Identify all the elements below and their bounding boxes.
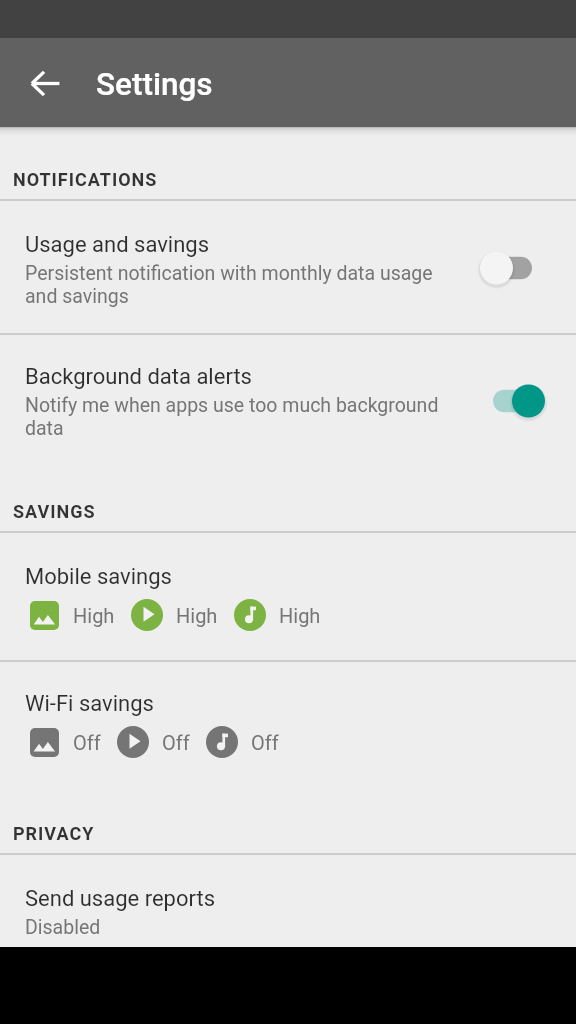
staticText: Off	[251, 731, 279, 754]
staticText: High	[73, 604, 115, 627]
button[interactable]: Background data alerts	[0, 335, 576, 465]
staticText: Persistent notification with monthly dat…	[25, 262, 455, 308]
button[interactable]: Mobile savings	[0, 533, 576, 660]
button[interactable]: Wi-Fi savings	[0, 662, 576, 787]
staticText: PRIVACY	[13, 823, 95, 844]
staticText: Disabled	[25, 916, 101, 939]
staticText: Mobile savings	[25, 564, 172, 590]
staticText: SAVINGS	[13, 501, 96, 522]
button[interactable]: Send usage reports	[0, 855, 576, 939]
staticText: Wi-Fi savings	[25, 691, 154, 717]
staticText: Settings	[96, 66, 213, 103]
button[interactable]: On	[470, 377, 546, 425]
staticText: Send usage reports	[25, 886, 216, 912]
button[interactable]: Off	[470, 244, 546, 292]
staticText: High	[279, 604, 321, 627]
button[interactable]: Usage and savings	[0, 201, 576, 333]
button[interactable]: Navigate up	[18, 56, 72, 110]
staticText: Usage and savings	[25, 232, 210, 258]
staticText: High	[176, 604, 218, 627]
staticText: Notify me when apps use too much backgro…	[25, 394, 455, 440]
staticText: Off	[73, 731, 101, 754]
staticText: NOTIFICATIONS	[13, 169, 158, 190]
staticText: Off	[162, 731, 190, 754]
staticText: Background data alerts	[25, 364, 252, 390]
